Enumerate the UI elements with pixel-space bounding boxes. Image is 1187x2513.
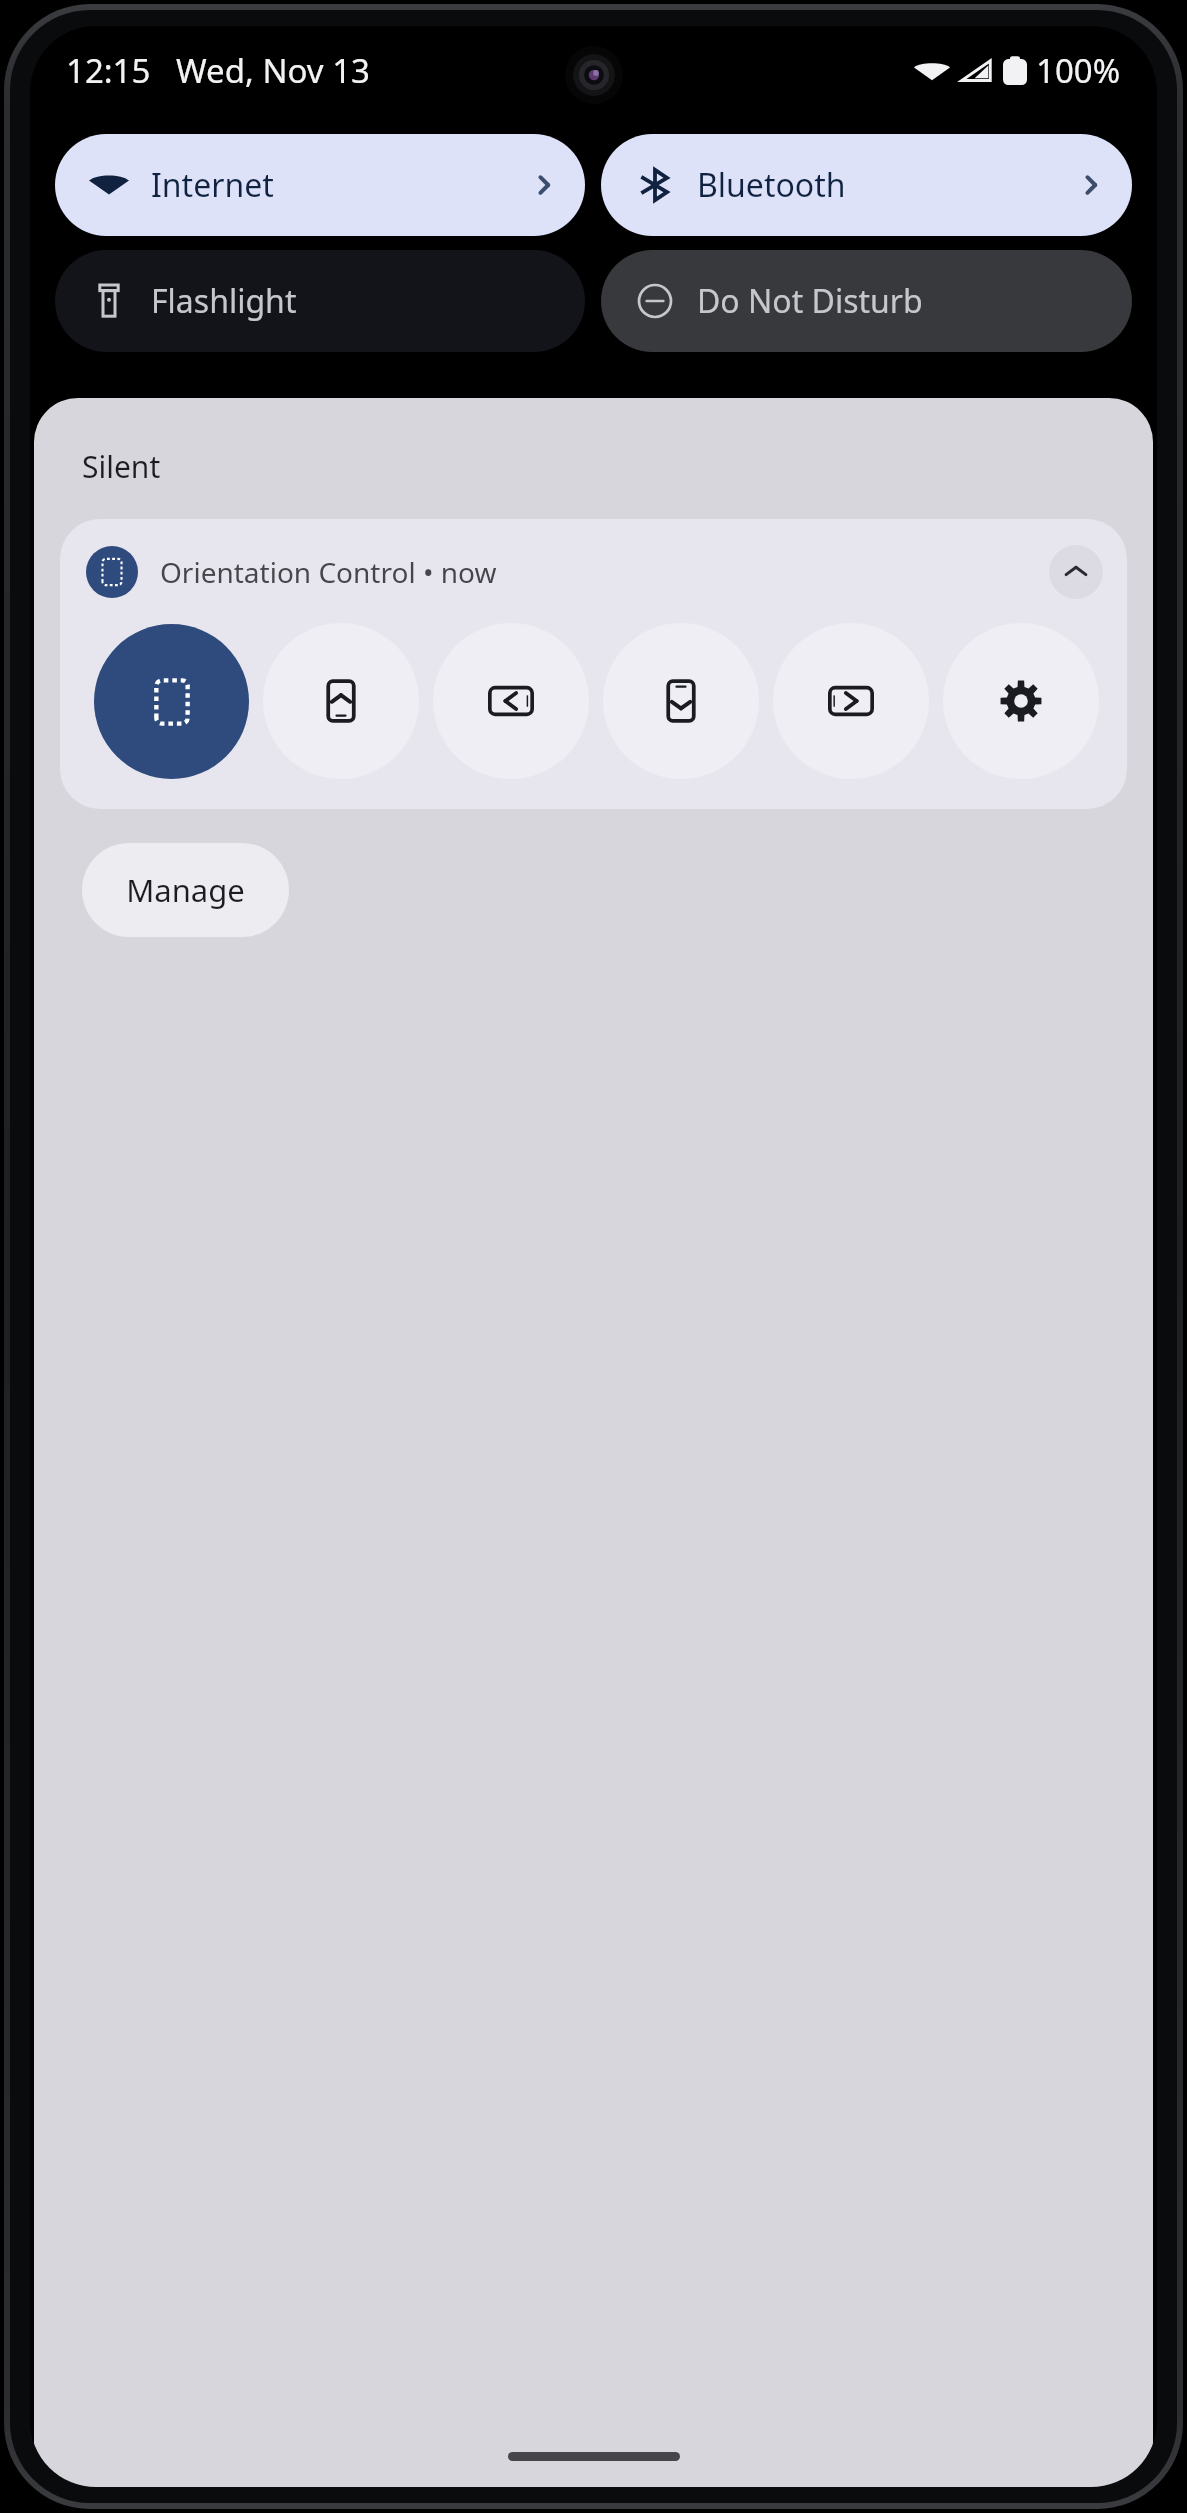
button[interactable]: Flashlight [55,250,585,352]
button[interactable]: Settings [943,623,1099,779]
staticText: 12:15 Wed, Nov 13 [66,48,370,93]
button[interactable]: Landscape left [433,623,589,779]
button[interactable]: Manage [82,843,289,937]
button[interactable]: Portrait reverse [603,623,759,779]
button[interactable]: Do Not Disturb [601,250,1132,352]
staticText: 100% [1036,48,1121,93]
staticText: Manage [126,869,245,911]
staticText: Orientation Control • now [160,553,1049,591]
button[interactable]: Collapse notification [1049,545,1103,599]
button[interactable]: Bluetooth [601,134,1132,236]
staticText: Do Not Disturb [697,279,1106,323]
staticText: Bluetooth [697,163,1076,207]
button[interactable]: Auto rotate [94,624,249,779]
button[interactable]: Orientation Control • now [60,519,1127,809]
button[interactable]: Landscape right [773,623,929,779]
button[interactable]: Internet [55,134,585,236]
staticText: Internet [151,163,529,207]
staticText: Silent [82,446,161,487]
staticText: Flashlight [151,279,559,323]
button[interactable]: Portrait [263,623,419,779]
